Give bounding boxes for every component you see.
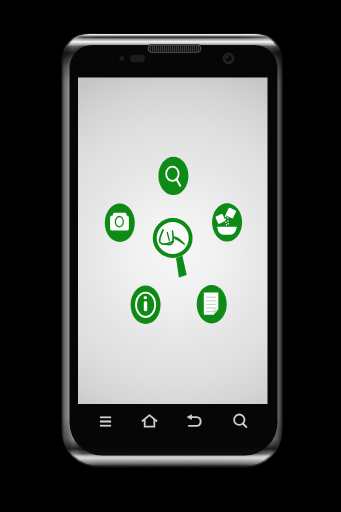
button[interactable]: Reports xyxy=(197,285,227,323)
button[interactable]: About xyxy=(131,286,161,324)
button[interactable]: Search xyxy=(158,157,188,195)
button[interactable]: Scan with camera xyxy=(105,204,135,242)
button[interactable]: Halal check xyxy=(151,216,195,260)
button[interactable]: Ingredients xyxy=(212,203,242,241)
